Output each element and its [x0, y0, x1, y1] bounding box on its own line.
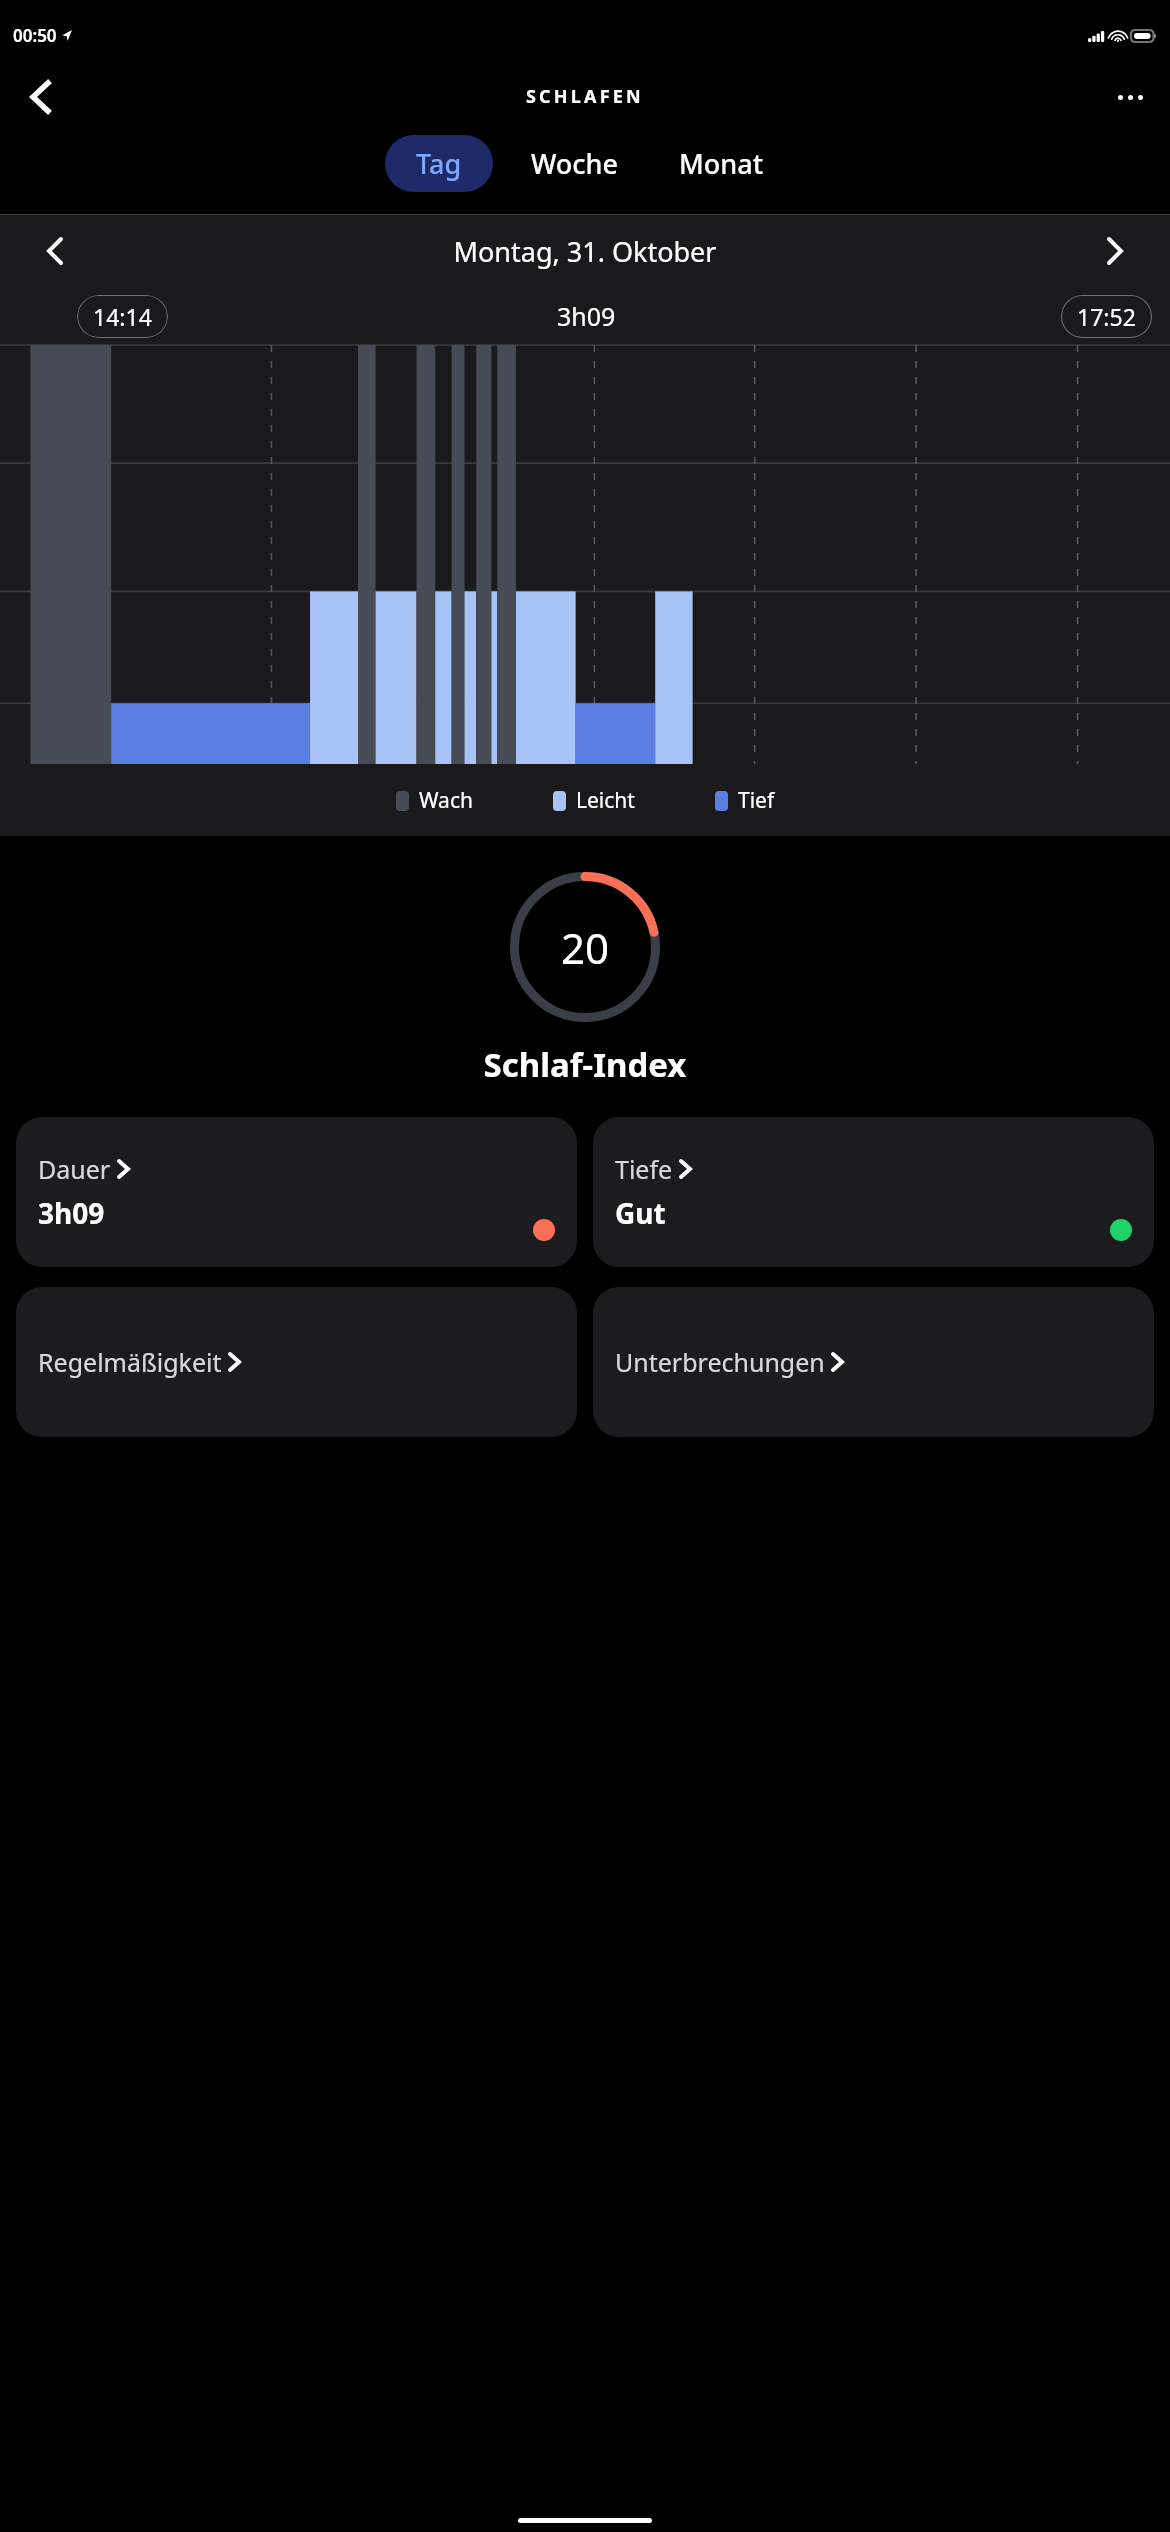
- staticText: Unterbrechungen: [615, 1345, 825, 1379]
- button[interactable]: Previous day: [0, 215, 110, 287]
- staticText: Tag: [416, 145, 462, 182]
- button[interactable]: Tief: [715, 786, 775, 815]
- button[interactable]: Tag: [385, 135, 493, 192]
- button[interactable]: Monat: [657, 135, 785, 192]
- staticText: Regelmäßigkeit: [38, 1345, 222, 1379]
- staticText: Leicht: [576, 786, 635, 815]
- button[interactable]: Dauer: [16, 1117, 577, 1267]
- staticText: Wach: [419, 786, 473, 815]
- staticText: 17:52: [1077, 301, 1136, 332]
- staticText: Montag, 31. Oktober: [110, 233, 1060, 270]
- button[interactable]: Unterbrechungen: [593, 1287, 1154, 1437]
- staticText: Tief: [738, 786, 775, 815]
- staticText: Monat: [679, 145, 763, 182]
- staticText: 14:14: [93, 301, 152, 332]
- staticText: Schlaf-Index: [0, 1042, 1170, 1087]
- button[interactable]: Woche: [509, 135, 641, 192]
- staticText: 20: [561, 919, 610, 976]
- button[interactable]: Tiefe: [593, 1117, 1154, 1267]
- button[interactable]: Wach: [396, 786, 473, 815]
- staticText: Dauer: [38, 1152, 111, 1186]
- staticText: Gut: [615, 1194, 666, 1232]
- staticText: 00:50: [13, 24, 57, 47]
- staticText: 3h09: [38, 1194, 105, 1232]
- button[interactable]: More options: [1106, 73, 1154, 121]
- staticText: Tiefe: [615, 1152, 673, 1186]
- button[interactable]: Back: [16, 73, 64, 121]
- staticText: Woche: [531, 145, 619, 182]
- button[interactable]: Next day: [1060, 215, 1170, 287]
- staticText: SCHLAFEN: [526, 84, 644, 109]
- button[interactable]: Regelmäßigkeit: [16, 1287, 577, 1437]
- button[interactable]: Leicht: [553, 786, 635, 815]
- staticText: 3h09: [557, 299, 616, 333]
